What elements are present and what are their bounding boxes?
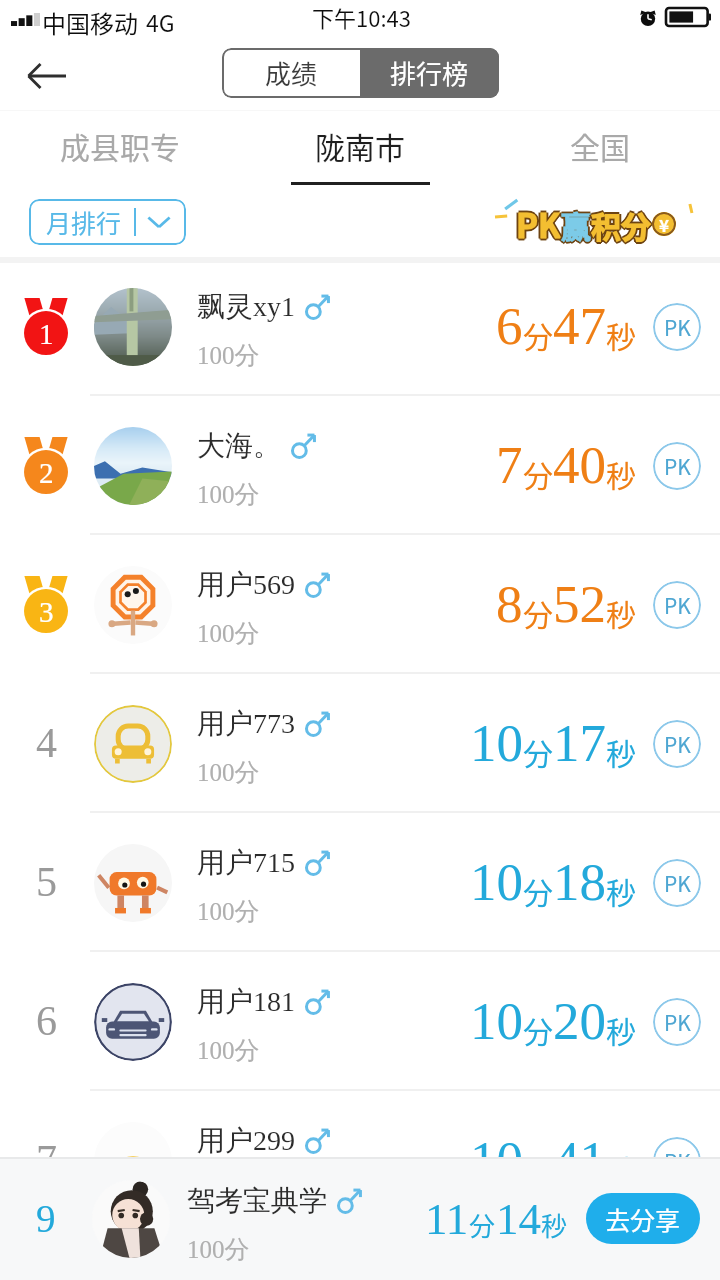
- staticText: PK: [664, 1007, 691, 1037]
- staticText: 100分: [197, 1035, 260, 1066]
- staticText: PK: [518, 200, 563, 248]
- staticText: 全国: [570, 124, 630, 167]
- staticText: 10: [470, 714, 523, 773]
- staticText: 月排行: [46, 204, 122, 240]
- staticText: PK: [516, 202, 561, 250]
- staticText: 分: [523, 1008, 553, 1051]
- button[interactable]: 成县职专: [0, 110, 240, 190]
- button[interactable]: 月排行: [29, 199, 186, 245]
- button[interactable]: 1: [0, 257, 720, 396]
- staticText: 赢: [561, 205, 591, 248]
- staticText: 3: [39, 596, 54, 628]
- button[interactable]: 排行榜: [360, 48, 499, 98]
- staticText: 赢: [563, 203, 593, 246]
- button[interactable]: 5: [0, 813, 720, 952]
- staticText: 成县职专: [60, 124, 180, 167]
- button[interactable]: 6: [0, 952, 720, 1091]
- button[interactable]: PK: [653, 998, 701, 1046]
- staticText: PK: [664, 729, 691, 759]
- staticText: 驾考宝典学: [187, 1183, 327, 1218]
- button[interactable]: Back: [16, 48, 78, 104]
- staticText: 2: [39, 457, 54, 489]
- button[interactable]: PK: [653, 303, 701, 351]
- staticText: 8: [496, 575, 523, 634]
- staticText: 分: [523, 869, 553, 912]
- staticText: 中国移动: [42, 5, 138, 40]
- staticText: PK: [516, 198, 561, 246]
- staticText: 秒: [606, 1147, 636, 1190]
- staticText: 5: [36, 859, 57, 906]
- staticText: 大海。: [197, 428, 281, 463]
- staticText: 用户715: [197, 845, 295, 880]
- staticText: PK: [664, 590, 691, 620]
- button[interactable]: 陇南市: [240, 110, 480, 190]
- staticText: 分: [469, 1206, 496, 1244]
- button[interactable]: PK: [653, 581, 701, 629]
- staticText: 14: [496, 1194, 541, 1244]
- staticText: 秒: [606, 869, 636, 912]
- staticText: PK: [664, 1146, 691, 1176]
- staticText: 分: [523, 591, 553, 634]
- staticText: 成绩: [265, 54, 318, 92]
- staticText: 40: [553, 436, 606, 495]
- staticText: 赢: [561, 201, 591, 244]
- staticText: 积分: [591, 203, 651, 246]
- staticText: 100分: [197, 896, 260, 927]
- staticText: 秒: [606, 1008, 636, 1051]
- button[interactable]: 2: [0, 396, 720, 535]
- staticText: 11: [425, 1194, 469, 1244]
- staticText: 赢: [562, 204, 592, 247]
- staticText: PK: [516, 200, 561, 248]
- staticText: 100分: [187, 1234, 250, 1265]
- button[interactable]: PK: [653, 720, 701, 768]
- button[interactable]: 9: [0, 1157, 720, 1280]
- staticText: 20: [553, 992, 606, 1051]
- staticText: PK: [517, 201, 562, 249]
- staticText: 排行榜: [390, 54, 469, 92]
- staticText: 分: [523, 1147, 553, 1190]
- button[interactable]: 4: [0, 674, 720, 813]
- staticText: 47: [553, 297, 606, 356]
- staticText: PK: [515, 201, 560, 249]
- staticText: 秒: [606, 730, 636, 773]
- button[interactable]: PK: [653, 442, 701, 490]
- staticText: 6: [36, 998, 57, 1045]
- staticText: 用户181: [197, 984, 295, 1019]
- staticText: 10: [470, 992, 523, 1051]
- staticText: 用户569: [197, 567, 295, 602]
- staticText: 分: [523, 730, 553, 773]
- staticText: 10: [470, 1131, 523, 1190]
- staticText: 用户299: [197, 1123, 295, 1158]
- staticText: 积分: [591, 205, 651, 248]
- button[interactable]: 全国: [480, 110, 720, 190]
- staticText: 赢: [559, 203, 589, 246]
- staticText: 积分: [589, 203, 649, 246]
- staticText: 秒: [541, 1206, 568, 1244]
- staticText: 52: [553, 575, 606, 634]
- staticText: 秒: [606, 591, 636, 634]
- button[interactable]: PK: [653, 1137, 701, 1185]
- staticText: 去分享: [605, 1201, 681, 1237]
- staticText: 100分: [197, 1174, 260, 1205]
- staticText: PK: [664, 312, 691, 342]
- button[interactable]: 7: [0, 1091, 720, 1230]
- staticText: 赢: [561, 203, 591, 246]
- button[interactable]: 3: [0, 535, 720, 674]
- staticText: 7: [496, 436, 523, 495]
- staticText: 100分: [197, 618, 260, 649]
- button[interactable]: PK赢积分活动: [494, 198, 697, 248]
- staticText: 100分: [197, 479, 260, 510]
- button[interactable]: 成绩: [222, 48, 360, 98]
- staticText: 积分: [592, 204, 652, 247]
- staticText: 用户773: [197, 706, 295, 741]
- button[interactable]: 去分享: [586, 1193, 700, 1244]
- staticText: ¥: [659, 212, 670, 236]
- staticText: 100分: [197, 757, 260, 788]
- staticText: 下午10:43: [312, 1, 411, 33]
- staticText: 分: [523, 313, 553, 356]
- staticText: 4: [36, 720, 57, 767]
- button[interactable]: PK: [653, 859, 701, 907]
- staticText: 秒: [606, 452, 636, 495]
- staticText: 41: [553, 1131, 606, 1190]
- staticText: 7: [36, 1137, 57, 1184]
